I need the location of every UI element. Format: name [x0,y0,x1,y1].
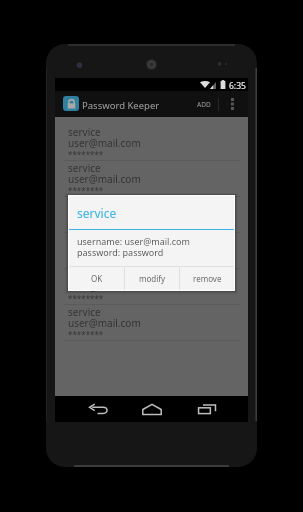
staticText: 6:35 [229,80,246,92]
staticText: service [68,161,101,175]
staticText: service [68,269,101,283]
staticText: service [68,233,101,247]
staticText: user@mail.com [68,244,141,258]
staticText: OK [91,273,103,284]
staticText: ******** [68,257,104,268]
button[interactable]: Home [137,396,167,422]
staticText: username: user@mail.com [77,235,190,247]
button[interactable]: modify [125,266,179,290]
staticText: ******** [68,293,104,304]
staticText: user@mail.com [68,136,141,150]
staticText: password: password [77,246,164,258]
staticText: Password Keeper [82,99,160,112]
staticText: ADD [197,100,211,109]
staticText: ******** [68,221,104,232]
staticText: ******** [68,185,104,196]
button[interactable]: remove [180,266,234,290]
staticText: service [68,125,101,139]
staticText: service [77,205,117,221]
staticText: service [68,305,101,319]
button[interactable]: OK [69,266,124,290]
staticText: modify [139,273,166,284]
staticText: ******** [68,149,104,160]
staticText: user@mail.com [68,280,141,294]
button[interactable]: service [55,305,248,341]
button[interactable]: More options [223,91,241,117]
button[interactable]: Recent apps [192,396,222,422]
button[interactable]: ADD [189,91,218,117]
staticText: user@mail.com [68,316,141,330]
staticText: ******** [68,329,104,340]
button[interactable]: service [55,161,248,197]
staticText: user@mail.com [68,172,141,186]
staticText: user@mail.com [68,208,141,222]
button[interactable]: service [55,125,248,161]
button[interactable]: service [55,233,248,269]
button[interactable]: Back [83,396,113,422]
button[interactable]: service [55,197,248,233]
button[interactable]: service [55,269,248,305]
staticText: remove [193,273,222,284]
